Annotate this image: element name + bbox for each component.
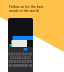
staticText: Follow on for the best <box>9 5 44 9</box>
button[interactable]: Send <box>24 48 28 51</box>
staticText: words in the world <box>9 9 39 13</box>
